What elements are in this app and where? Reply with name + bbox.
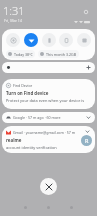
staticText: Protect your data even when your device … [6,98,91,103]
button[interactable]: Quick tile 0 [6,33,20,47]
staticText: Turn on Find device [6,90,49,96]
button[interactable]: Settings [83,9,89,15]
staticText: R [85,137,89,144]
staticText: 1:31 [3,3,25,18]
button[interactable]: Quick tile 4 [77,33,91,47]
button[interactable]: Brightness [2,62,95,73]
button[interactable]: Quick tile 1 [24,33,38,47]
button[interactable]: Google · 57 m ago · 60 more [2,112,95,123]
button[interactable]: This month 3.2GB [38,50,79,58]
button[interactable]: Home [42,201,54,213]
staticText: This month 3.2GB [46,52,77,57]
button[interactable]: Quick tile 2 [42,33,56,47]
button[interactable]: Clear all notifications [40,178,57,195]
button[interactable]: Quick tile 3 [59,33,73,47]
button[interactable]: Find Device [2,79,95,109]
button[interactable]: Gmail · yourname@gmail.com · 57 m [2,126,95,153]
staticText: Today 38°C [14,52,33,57]
staticText: Gmail · yourname@gmail.com · 57 m [13,130,76,135]
staticText: Find Device [13,83,33,88]
button[interactable]: Back [19,201,31,213]
button[interactable]: Recents [65,201,77,213]
button[interactable]: Today 38°C [6,50,35,58]
staticText: account identity verification [6,145,57,150]
staticText: Google · 57 m ago · 60 more [13,115,61,120]
staticText: Fri, Mar 14 [4,18,22,23]
staticText: realme [6,137,22,143]
